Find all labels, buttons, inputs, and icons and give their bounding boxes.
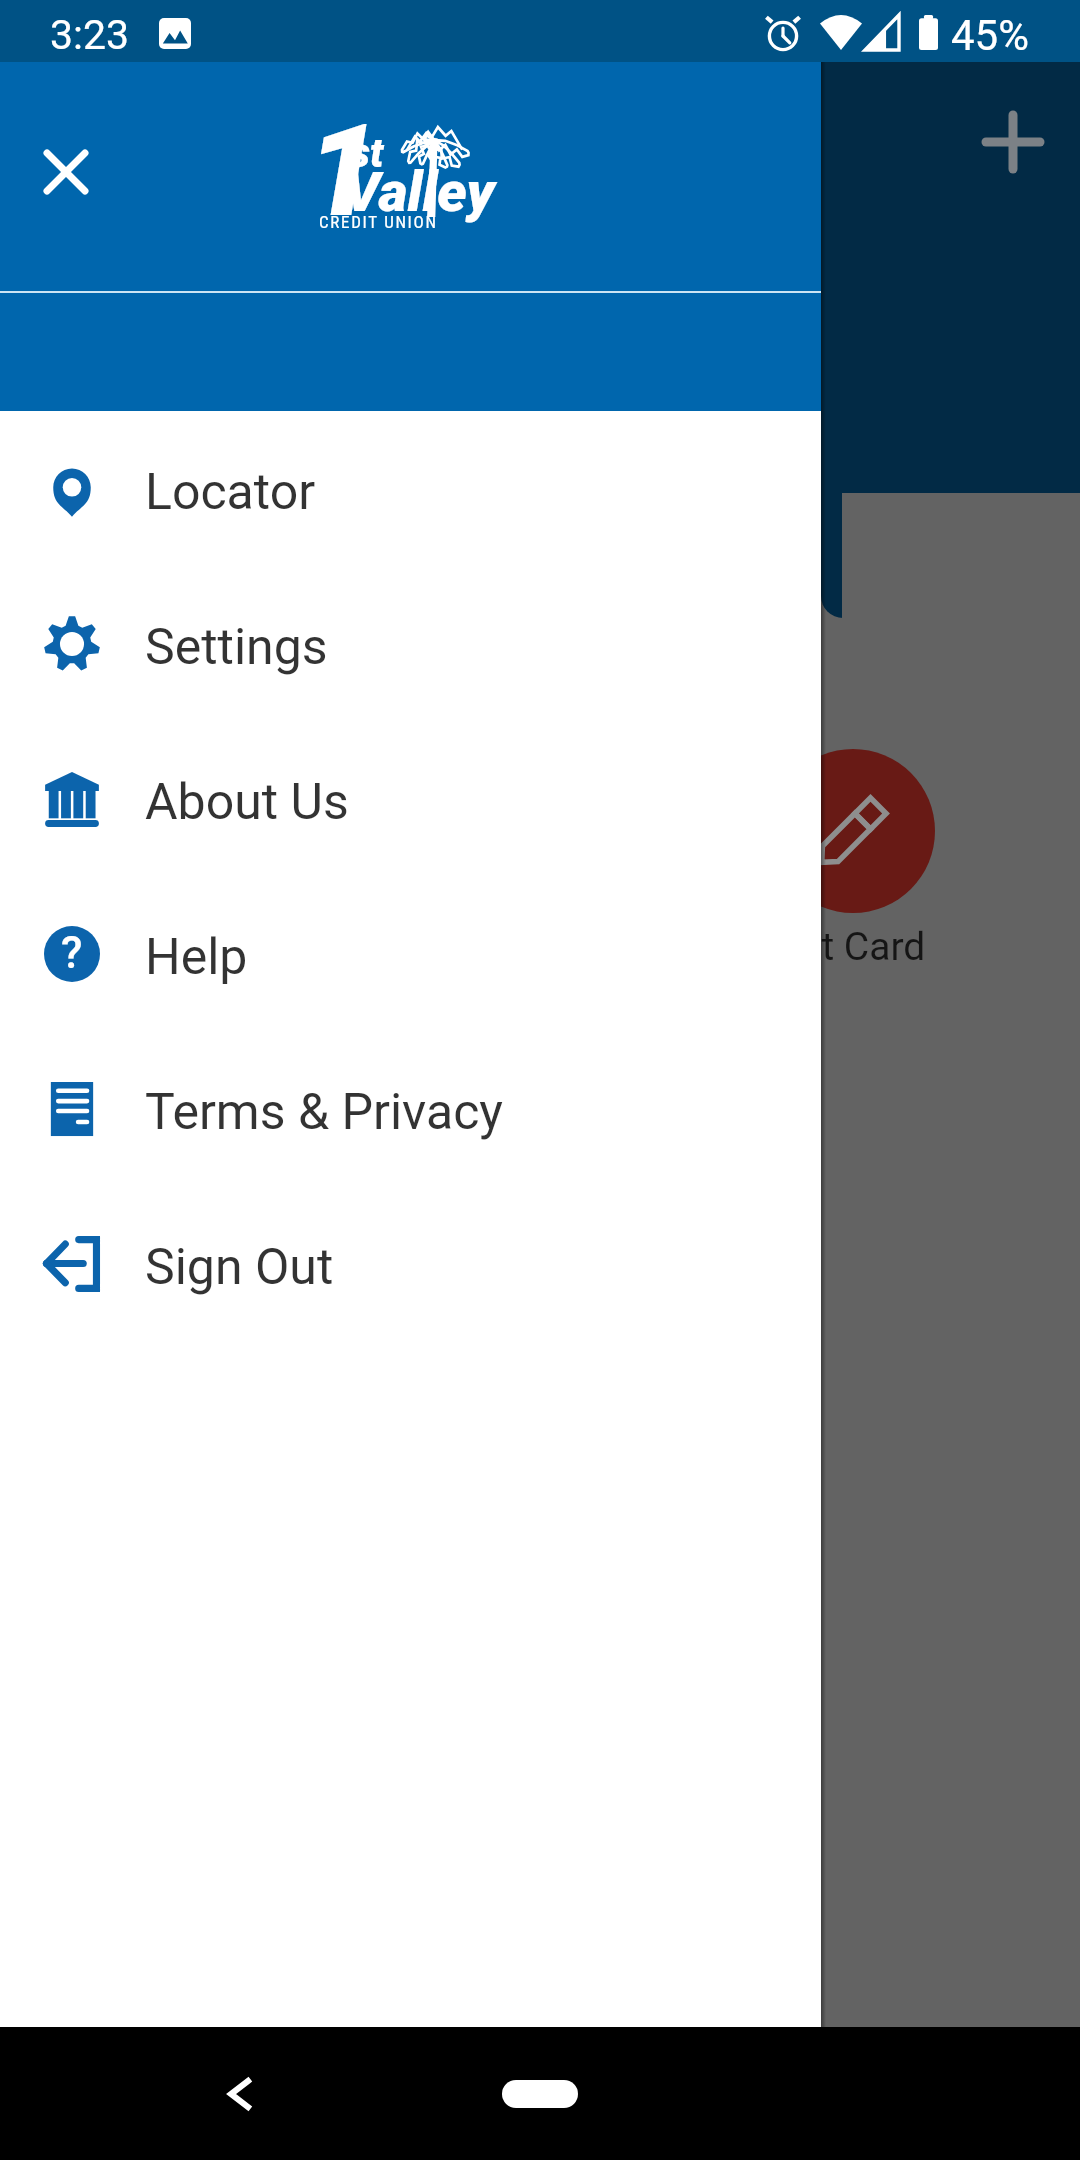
button[interactable]: ?: [0, 876, 821, 1031]
staticText: Locator: [145, 463, 316, 522]
staticText: 1: [307, 96, 379, 221]
staticText: Help: [145, 928, 248, 987]
staticText: Credit Card: [731, 924, 926, 970]
staticText: Sign Out: [145, 1238, 334, 1297]
staticText: About Us: [145, 773, 349, 832]
button[interactable]: Locator: [0, 411, 821, 566]
button[interactable]: Back: [189, 2044, 289, 2144]
staticText: 3:23: [50, 11, 130, 59]
button[interactable]: Home: [502, 2080, 578, 2108]
button[interactable]: Settings: [0, 566, 821, 721]
button[interactable]: Terms & Privacy: [0, 1031, 821, 1186]
staticText: Valley: [344, 159, 495, 225]
staticText: st: [350, 130, 384, 177]
button[interactable]: Sign Out: [0, 1186, 821, 1341]
staticText: Settings: [145, 618, 328, 677]
staticText: Terms & Privacy: [145, 1083, 503, 1142]
button[interactable]: Credit Card: [771, 749, 935, 913]
staticText: 45%: [951, 11, 1029, 60]
button[interactable]: Add: [963, 92, 1063, 192]
button[interactable]: About Us: [0, 721, 821, 876]
staticText: ?: [61, 927, 83, 979]
staticText: CREDIT UNION: [319, 212, 438, 232]
button[interactable]: Close menu: [16, 122, 116, 222]
